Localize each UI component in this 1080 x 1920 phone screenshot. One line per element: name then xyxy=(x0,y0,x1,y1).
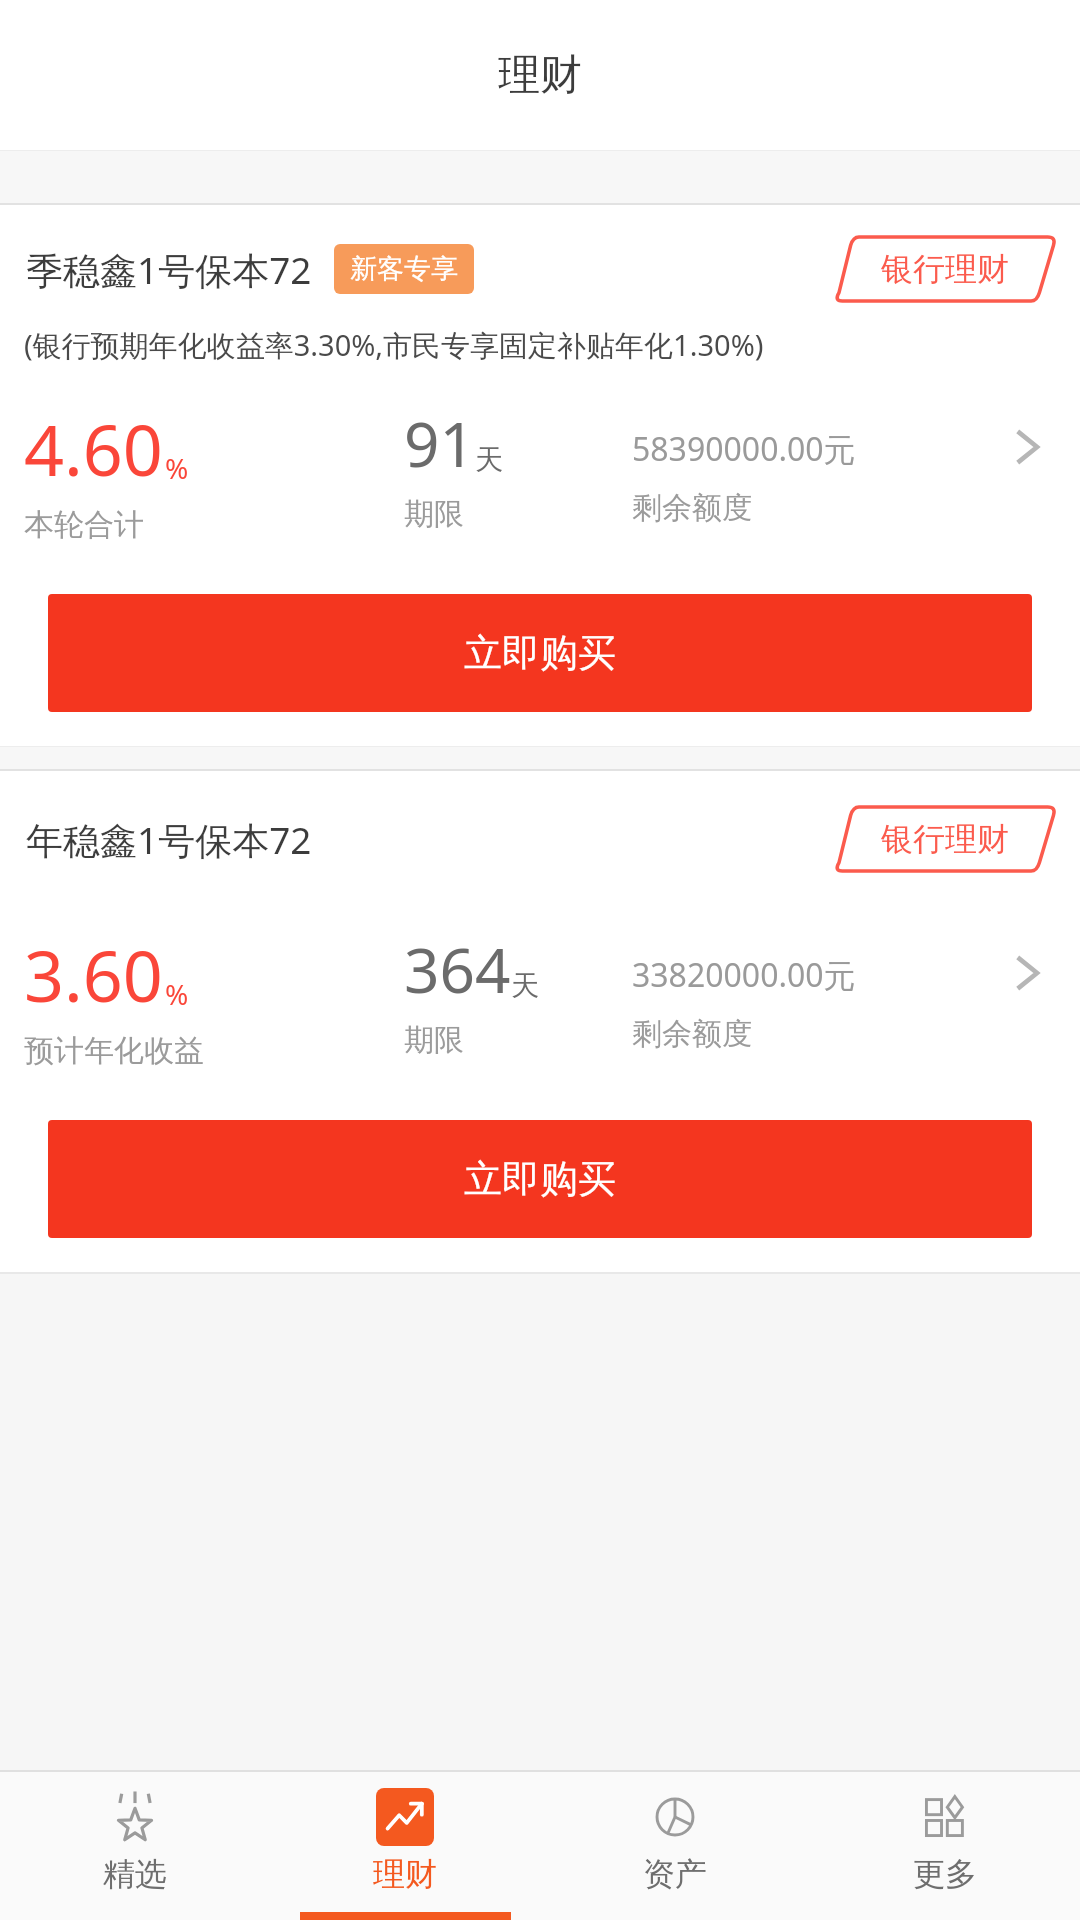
staticText: 3.60 xyxy=(24,927,163,1022)
staticText: 立即购买 xyxy=(464,1155,616,1203)
staticText: 天 xyxy=(511,968,539,1003)
button[interactable]: 银行理财 xyxy=(834,807,1056,871)
staticText: 新客专享 xyxy=(350,252,458,286)
button[interactable]: 查看详情 xyxy=(996,417,1056,477)
button[interactable]: 精选 xyxy=(0,1772,270,1920)
staticText: 本轮合计 xyxy=(24,506,144,544)
staticText: 91 xyxy=(404,401,475,485)
staticText: 剩余额度 xyxy=(632,489,752,527)
staticText: % xyxy=(165,975,189,1013)
staticText: 季稳鑫1号保本72 xyxy=(26,244,312,295)
button[interactable]: 新客专享 xyxy=(334,244,474,294)
button[interactable]: 资产 xyxy=(540,1772,810,1920)
staticText: 58390000.00元 xyxy=(632,427,856,471)
staticText: 更多 xyxy=(913,1854,977,1894)
staticText: 理财 xyxy=(373,1854,437,1894)
staticText: 银行理财 xyxy=(881,819,1009,859)
staticText: 4.60 xyxy=(24,401,163,496)
button[interactable]: 更多 xyxy=(810,1772,1080,1920)
staticText: 资产 xyxy=(643,1854,707,1894)
staticText: 天 xyxy=(475,442,503,477)
button[interactable]: 查看详情 xyxy=(996,943,1056,1003)
staticText: 立即购买 xyxy=(464,629,616,677)
staticText: 364 xyxy=(404,927,511,1011)
staticText: 精选 xyxy=(103,1854,167,1894)
button[interactable]: 立即购买 xyxy=(48,1120,1032,1238)
staticText: 年稳鑫1号保本72 xyxy=(26,814,312,865)
staticText: 银行理财 xyxy=(881,249,1009,289)
staticText: 理财 xyxy=(498,49,582,102)
staticText: 33820000.00元 xyxy=(632,953,856,997)
button[interactable]: 银行理财 xyxy=(834,237,1056,301)
button[interactable]: 立即购买 xyxy=(48,594,1032,712)
staticText: % xyxy=(165,449,189,487)
staticText: 期限 xyxy=(404,1021,464,1059)
staticText: 剩余额度 xyxy=(632,1015,752,1053)
staticText: 预计年化收益 xyxy=(24,1032,204,1070)
staticText: (银行预期年化收益率3.30%,市民专享固定补贴年化1.30%) xyxy=(24,325,764,365)
staticText: 期限 xyxy=(404,495,464,533)
button[interactable]: 理财 xyxy=(270,1772,540,1920)
